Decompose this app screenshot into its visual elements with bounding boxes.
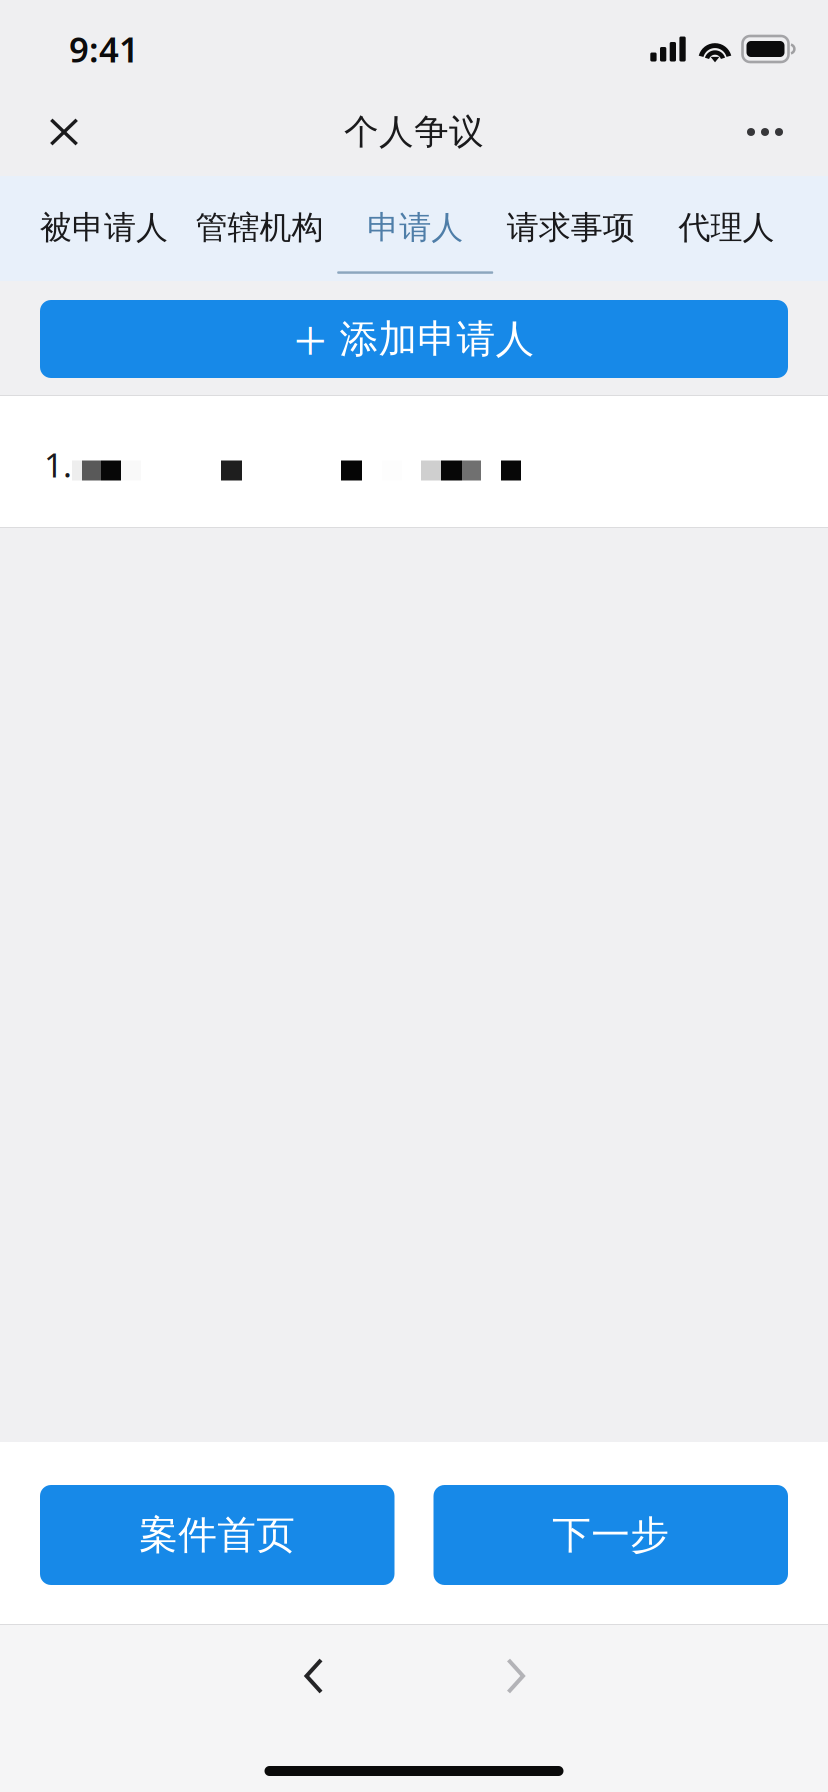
button[interactable]: More options — [736, 99, 794, 165]
staticText: 管辖机构 — [196, 208, 324, 247]
button[interactable]: 管辖机构 — [182, 176, 337, 281]
button[interactable]: Back — [281, 1639, 347, 1713]
button[interactable]: 案件首页 — [40, 1485, 394, 1585]
staticText: 9:41 — [69, 26, 139, 72]
button[interactable]: 请求事项 — [493, 176, 648, 281]
staticText: 代理人 — [678, 208, 774, 247]
button[interactable]: 代理人 — [648, 176, 804, 281]
staticText: 下一步 — [552, 1511, 669, 1559]
staticText: 1. — [44, 442, 72, 487]
button[interactable]: 被申请人 — [26, 176, 182, 281]
staticText: 添加申请人 — [339, 315, 534, 363]
button[interactable]: 申请人 — [337, 176, 493, 281]
staticText: 请求事项 — [507, 208, 635, 247]
button[interactable]: + — [40, 300, 788, 378]
button[interactable]: Close — [35, 99, 93, 165]
button[interactable]: Forward — [483, 1639, 549, 1713]
staticText: 被申请人 — [40, 208, 168, 247]
button[interactable]: 下一步 — [433, 1485, 788, 1585]
staticText: 案件首页 — [139, 1511, 295, 1559]
staticText: + — [293, 300, 326, 378]
button[interactable]: Applicant 1 — [0, 396, 828, 527]
staticText: 申请人 — [367, 208, 463, 247]
staticText: 个人争议 — [344, 111, 484, 153]
